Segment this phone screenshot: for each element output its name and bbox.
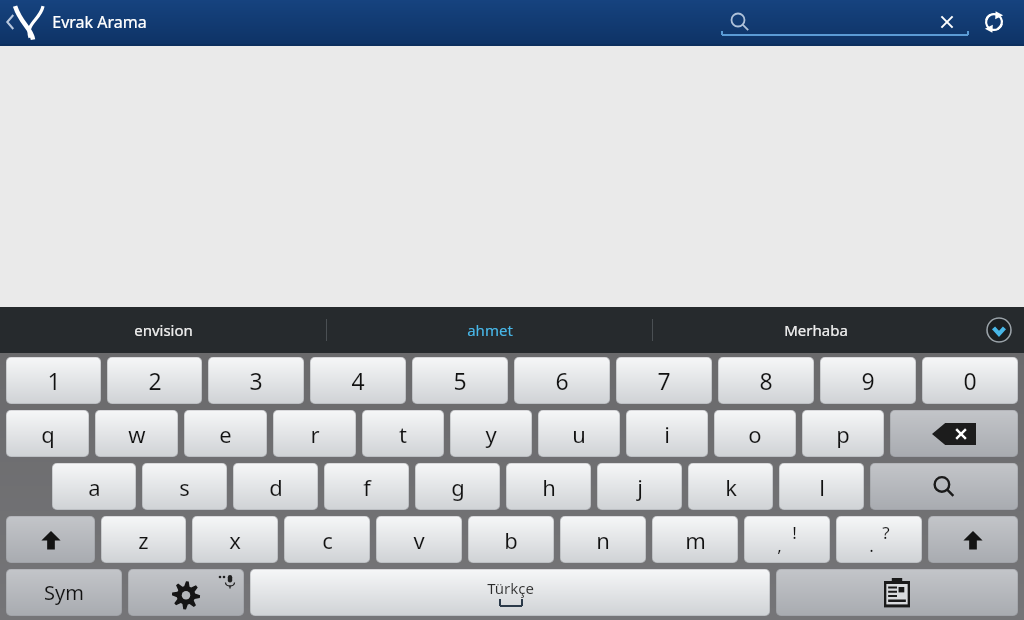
staticText: w (128, 419, 146, 449)
staticText: l (819, 472, 825, 502)
staticText: 1 (47, 365, 61, 396)
button[interactable]: 8 (718, 357, 814, 404)
staticText: h (542, 472, 556, 502)
staticText: Merhaba (784, 320, 848, 340)
button[interactable]: q (6, 410, 89, 457)
button[interactable]: f (324, 463, 409, 510)
button[interactable]: e (184, 410, 267, 457)
staticText: g (451, 472, 465, 502)
button[interactable]: b (468, 516, 554, 563)
button[interactable]: ahmet (327, 307, 652, 353)
button[interactable]: 4 (310, 357, 406, 404)
button[interactable]: v (376, 516, 462, 563)
staticText: ahmet (467, 320, 513, 340)
button[interactable]: Shift (928, 516, 1018, 563)
staticText: m (685, 525, 706, 555)
button[interactable]: k (688, 463, 773, 510)
staticText: b (504, 525, 518, 555)
button[interactable]: m (652, 516, 738, 563)
staticText: Sym (44, 579, 84, 606)
button[interactable]: o (714, 410, 796, 457)
button[interactable]: Back (2, 0, 54, 44)
button[interactable]: Space (250, 569, 770, 616)
button[interactable]: Clear (928, 2, 966, 42)
button[interactable]: 1 (6, 357, 101, 404)
staticText: ? (882, 521, 890, 544)
staticText: p (836, 419, 850, 449)
button[interactable]: g (415, 463, 500, 510)
staticText: 9 (861, 365, 875, 396)
button[interactable]: d (233, 463, 318, 510)
button[interactable]: a (52, 463, 136, 510)
button[interactable]: 5 (412, 357, 508, 404)
staticText: . (869, 534, 874, 557)
button[interactable]: 9 (820, 357, 916, 404)
button[interactable]: p (802, 410, 884, 457)
button[interactable] (722, 2, 968, 42)
staticText: 0 (963, 365, 977, 396)
button[interactable]: envision (0, 307, 326, 353)
staticText: u (572, 419, 586, 449)
staticText: c (322, 525, 333, 555)
button[interactable]: Input settings (128, 569, 244, 616)
button[interactable]: j (597, 463, 682, 510)
button[interactable]: y (450, 410, 532, 457)
staticText: d (269, 472, 283, 502)
staticText: 8 (759, 365, 773, 396)
staticText: s (179, 472, 190, 502)
button[interactable]: 7 (616, 357, 712, 404)
staticText: envision (134, 320, 193, 340)
staticText: r (310, 419, 320, 449)
staticText: x (229, 525, 241, 555)
staticText: k (725, 472, 737, 502)
staticText: f (363, 472, 371, 502)
button[interactable]: Search (870, 463, 1018, 510)
button[interactable]: t (362, 410, 444, 457)
button[interactable]: u (538, 410, 620, 457)
staticText: 4 (351, 365, 365, 396)
button[interactable]: i (626, 410, 708, 457)
button[interactable]: n (560, 516, 646, 563)
button[interactable]: Shift (6, 516, 95, 563)
staticText: 3 (249, 365, 263, 396)
staticText: 5 (453, 365, 467, 396)
button[interactable]: Expand suggestions (982, 313, 1016, 347)
staticText: i (664, 419, 670, 449)
button[interactable]: s (142, 463, 227, 510)
staticText: n (596, 525, 610, 555)
staticText: a (88, 472, 101, 502)
button[interactable]: 2 (107, 357, 202, 404)
button[interactable]: Backspace (890, 410, 1018, 457)
staticText: v (413, 525, 425, 555)
button[interactable]: z (101, 516, 186, 563)
staticText: o (748, 419, 762, 449)
button[interactable]: 6 (514, 357, 610, 404)
button[interactable]: Comma and exclamation (744, 516, 830, 563)
staticText: q (41, 419, 55, 449)
button[interactable]: Period and question (836, 516, 922, 563)
button[interactable]: w (95, 410, 178, 457)
staticText: , (777, 534, 782, 557)
button[interactable]: Merhaba (653, 307, 978, 353)
button[interactable]: Clipboard (776, 569, 1018, 616)
staticText: 7 (657, 365, 671, 396)
staticText: y (485, 419, 497, 449)
button[interactable]: 3 (208, 357, 304, 404)
button[interactable]: l (779, 463, 864, 510)
button[interactable]: h (506, 463, 591, 510)
staticText: 6 (555, 365, 569, 396)
button[interactable]: Sym (6, 569, 122, 616)
staticText: 2 (148, 365, 162, 396)
staticText: j (637, 472, 643, 502)
staticText: Evrak Arama (52, 11, 147, 33)
button[interactable]: c (284, 516, 370, 563)
staticText: e (219, 419, 232, 449)
staticText: ! (792, 521, 797, 544)
staticText: z (138, 525, 149, 555)
button[interactable]: x (192, 516, 278, 563)
button[interactable]: 0 (922, 357, 1018, 404)
button[interactable]: r (273, 410, 356, 457)
staticText: t (399, 419, 407, 449)
button[interactable]: Refresh (974, 2, 1014, 42)
staticText: Türkçe (487, 578, 534, 598)
